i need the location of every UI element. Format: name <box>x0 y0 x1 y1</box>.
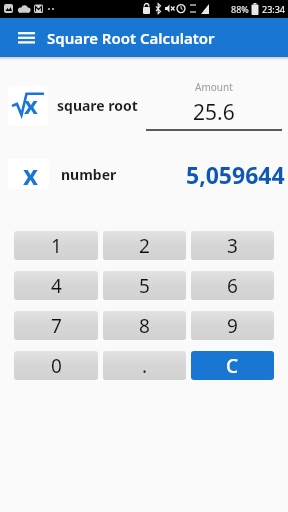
button[interactable]: 9 <box>191 311 274 340</box>
button[interactable]: 2 <box>103 231 186 260</box>
staticText: 25.6 <box>193 98 235 127</box>
staticText: 5 <box>139 273 150 299</box>
button[interactable]: 0 <box>14 351 98 380</box>
staticText: C <box>226 353 239 379</box>
button[interactable]: 3 <box>191 231 274 260</box>
staticText: 4 <box>51 273 62 299</box>
button[interactable]: 1 <box>14 231 98 260</box>
staticText: square root <box>57 96 138 115</box>
staticText: x <box>23 159 39 187</box>
staticText: number <box>61 165 117 184</box>
staticText: 3 <box>227 233 238 259</box>
button[interactable]: 5 <box>103 271 186 300</box>
staticText: 0 <box>51 353 62 379</box>
staticText: x <box>24 88 38 121</box>
button[interactable] <box>14 26 38 50</box>
button[interactable]: . <box>103 351 186 380</box>
staticText: . <box>142 353 148 379</box>
button[interactable]: 8 <box>103 311 186 340</box>
button[interactable]: C <box>191 351 274 380</box>
button[interactable]: 6 <box>191 271 274 300</box>
staticText: 7 <box>51 313 62 339</box>
staticText: 6 <box>227 273 238 299</box>
staticText: 1 <box>51 233 62 259</box>
staticText: 23:34 <box>262 3 286 15</box>
staticText: 9 <box>227 313 238 339</box>
staticText: 88% <box>231 3 249 15</box>
button[interactable]: 7 <box>14 311 98 340</box>
staticText: 5,059644 <box>186 159 285 190</box>
staticText: Amount <box>195 80 233 94</box>
staticText: 2 <box>139 233 150 259</box>
button[interactable]: 4 <box>14 271 98 300</box>
staticText: Square Root Calculator <box>47 28 215 48</box>
staticText: 8 <box>139 313 150 339</box>
